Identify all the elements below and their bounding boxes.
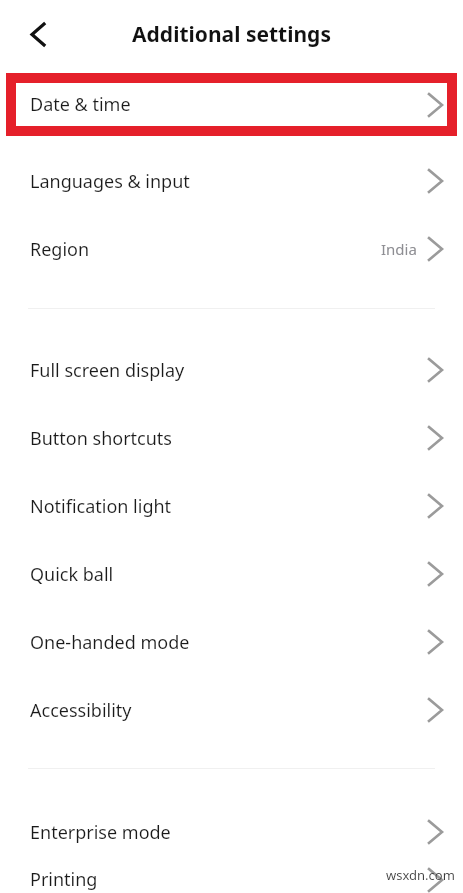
button[interactable]: Languages & input [0,147,463,215]
button[interactable]: Region [0,215,463,283]
button[interactable]: Printing [0,866,463,893]
staticText: Date & time [30,92,131,117]
button[interactable]: Enterprise mode [0,798,463,866]
button[interactable]: Back [16,12,60,56]
staticText: Languages & input [30,169,190,194]
button[interactable]: One-handed mode [0,608,463,676]
staticText: India [381,239,417,259]
staticText: Quick ball [30,562,114,587]
button[interactable]: Notification light [0,472,463,540]
staticText: Button shortcuts [30,426,172,451]
staticText: One-handed mode [30,630,190,655]
staticText: wsxdn.com [386,866,455,884]
button[interactable]: Accessibility [0,676,463,744]
button[interactable]: Button shortcuts [0,404,463,472]
staticText: Enterprise mode [30,820,171,845]
staticText: Accessibility [30,698,132,723]
staticText: Additional settings [132,20,331,49]
button[interactable]: Full screen display [0,336,463,404]
staticText: Notification light [30,494,172,519]
button[interactable]: Date & time [11,78,452,131]
staticText: Full screen display [30,358,185,383]
staticText: Printing [30,867,98,892]
button[interactable]: Quick ball [0,540,463,608]
staticText: Region [30,237,90,262]
